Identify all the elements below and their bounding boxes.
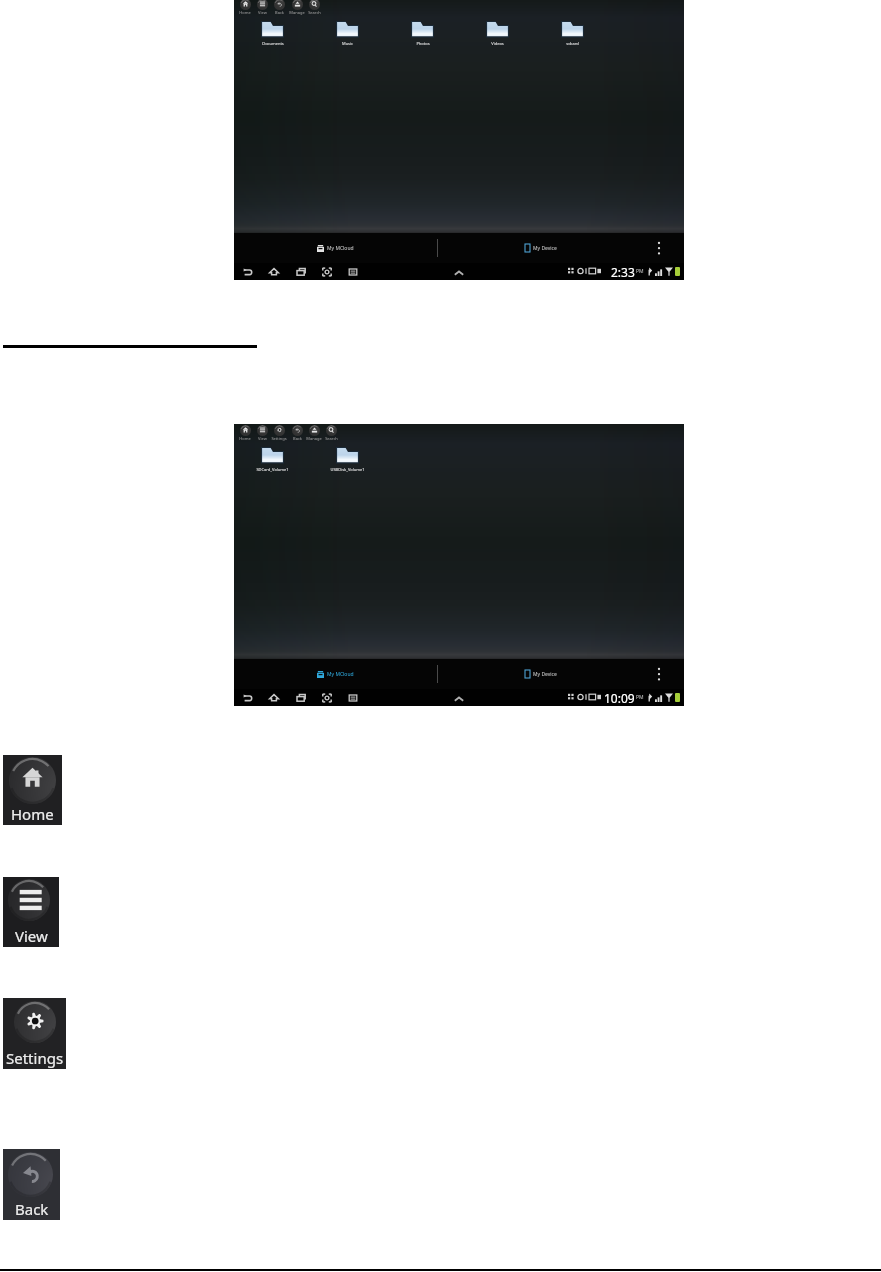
button[interactable]: Menu (346, 265, 360, 279)
button[interactable]: Recent apps (294, 265, 308, 279)
button[interactable]: Settings (3, 998, 66, 1069)
staticText: 10:09 (604, 690, 635, 705)
staticText: Back (293, 436, 302, 441)
staticText: Settings (6, 1048, 64, 1068)
staticText: Photos (416, 41, 430, 46)
staticText: sdcard (566, 41, 579, 46)
staticText: View (258, 436, 267, 441)
staticText: SDCard_Volume1 (256, 467, 289, 472)
staticText: Home (11, 804, 54, 824)
staticText: USBDisk_Volume1 (330, 467, 365, 472)
staticText: Music (342, 41, 353, 46)
staticText: PM (636, 694, 644, 701)
button[interactable]: Back (3, 1149, 60, 1220)
staticText: Search (308, 10, 321, 15)
button[interactable]: Manage (292, 0, 303, 10)
button[interactable]: Show notifications (452, 267, 466, 281)
button[interactable]: Documents (250, 19, 294, 46)
button[interactable]: Screenshot (320, 691, 334, 705)
button[interactable]: Photos (400, 19, 444, 46)
button[interactable]: More options (654, 667, 664, 682)
button[interactable]: Home (240, 425, 251, 436)
staticText: My MCloud (327, 671, 354, 678)
button[interactable]: Back (274, 0, 285, 10)
button[interactable]: Search (309, 0, 320, 10)
button[interactable]: Settings (274, 425, 285, 436)
button[interactable]: More options (654, 241, 664, 256)
button[interactable]: Screenshot (320, 265, 334, 279)
staticText: View (258, 10, 267, 15)
button[interactable]: My MCloud (234, 233, 437, 263)
button[interactable]: My MCloud (234, 659, 437, 689)
staticText: View (15, 926, 48, 946)
button[interactable]: Music (325, 19, 369, 46)
staticText: My Device (533, 671, 557, 678)
button[interactable]: View (257, 425, 268, 436)
staticText: PM (636, 268, 644, 275)
staticText: Home (239, 10, 251, 15)
staticText: Back (15, 1199, 49, 1219)
staticText: Search (325, 436, 338, 441)
staticText: 2:33 (611, 264, 635, 279)
staticText: Back (275, 10, 284, 15)
staticText: My Device (533, 245, 557, 252)
button[interactable]: Back (292, 425, 303, 436)
staticText: My MCloud (327, 245, 354, 252)
staticText: Documents (262, 41, 284, 46)
button[interactable]: View (257, 0, 268, 10)
button[interactable]: sdcard (550, 19, 594, 46)
button[interactable]: Home (267, 691, 281, 705)
staticText: Videos (491, 41, 504, 46)
button[interactable]: SDCard_Volume1 (250, 445, 294, 472)
button[interactable]: Menu (346, 691, 360, 705)
button[interactable]: Videos (475, 19, 519, 46)
button[interactable]: My Device (438, 233, 643, 263)
staticText: Manage (289, 10, 305, 15)
button[interactable]: Home (240, 0, 251, 10)
button[interactable]: View (3, 877, 59, 947)
staticText: Manage (306, 436, 322, 441)
button[interactable]: My Device (438, 659, 643, 689)
button[interactable]: Show notifications (452, 693, 466, 707)
staticText: Home (239, 436, 251, 441)
button[interactable]: Manage (309, 425, 320, 436)
button[interactable]: Recent apps (294, 691, 308, 705)
button[interactable]: USBDisk_Volume1 (325, 445, 369, 472)
button[interactable]: Search (326, 425, 337, 436)
button[interactable]: Back (241, 265, 255, 279)
button[interactable]: Home (3, 755, 62, 825)
button[interactable]: Home (267, 265, 281, 279)
button[interactable]: Back (241, 691, 255, 705)
staticText: Settings (271, 436, 287, 441)
